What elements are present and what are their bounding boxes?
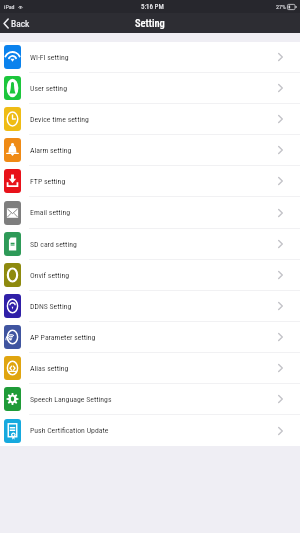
staticText: Back xyxy=(11,18,30,29)
button[interactable]: Back xyxy=(0,13,300,33)
button[interactable]: Speech Language Settings xyxy=(0,384,300,415)
button[interactable]: Email setting xyxy=(0,197,300,229)
staticText: AP Parameter setting xyxy=(30,333,96,342)
staticText: Speech Language Settings xyxy=(30,395,112,404)
button[interactable]: User setting xyxy=(0,73,300,104)
button[interactable]: Onvif setting xyxy=(0,260,300,291)
staticText: WI-FI setting xyxy=(30,53,69,62)
button[interactable]: Device time setting xyxy=(0,104,300,135)
staticText: Push Certification Update xyxy=(30,426,109,435)
staticText: DDNS Setting xyxy=(30,302,72,311)
button[interactable]: Alarm setting xyxy=(0,135,300,166)
button[interactable]: Push Certification Update xyxy=(0,415,300,446)
staticText: iPad xyxy=(4,3,15,10)
button[interactable]: WI-FI setting xyxy=(0,42,300,73)
staticText: FTP setting xyxy=(30,177,66,186)
staticText: SD card setting xyxy=(30,240,77,249)
staticText: 5:16 PM xyxy=(141,3,164,11)
button[interactable]: Alias setting xyxy=(0,353,300,384)
button[interactable]: DDNS Setting xyxy=(0,291,300,322)
button[interactable]: AP Parameter setting xyxy=(0,322,300,353)
staticText: Alias setting xyxy=(30,364,69,373)
button[interactable]: SD card setting xyxy=(0,229,300,260)
staticText: Alarm setting xyxy=(30,146,72,155)
staticText: User setting xyxy=(30,84,67,93)
staticText: 27% xyxy=(276,3,286,10)
staticText: Onvif setting xyxy=(30,271,70,280)
button[interactable]: FTP setting xyxy=(0,166,300,197)
staticText: Setting xyxy=(135,17,165,29)
staticText: Device time setting xyxy=(30,115,89,124)
staticText: Email setting xyxy=(30,208,71,217)
